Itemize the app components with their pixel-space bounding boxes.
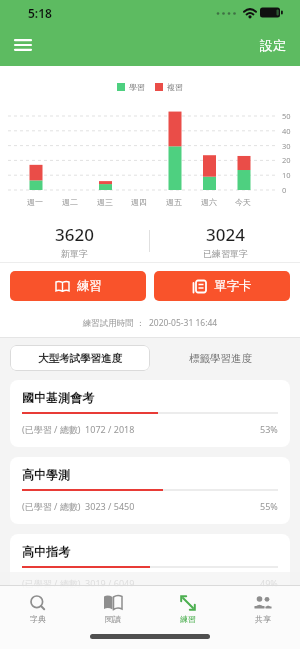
button[interactable]: 字典 — [0, 592, 75, 624]
staticText: 10 — [282, 170, 291, 180]
button[interactable]: 共享 — [225, 592, 300, 624]
button[interactable] — [15, 39, 31, 51]
staticText: (已學習 / 總數) 3023 / 5450 — [22, 500, 135, 512]
staticText: 共享 — [255, 614, 271, 624]
staticText: 30 — [282, 141, 291, 151]
button[interactable]: 大型考試學習進度 — [10, 345, 150, 371]
staticText: 設定 — [260, 37, 286, 53]
staticText: (已學習 / 總數) 1072 / 2018 — [22, 423, 135, 435]
staticText: 高中學測 — [22, 467, 70, 482]
staticText: 0 — [282, 185, 287, 195]
staticText: 字典 — [30, 614, 46, 624]
staticText: 練習 — [77, 278, 102, 294]
button[interactable]: 標籤學習進度 — [150, 345, 290, 371]
button[interactable]: 設定 — [260, 37, 300, 53]
staticText: 標籤學習進度 — [189, 352, 252, 365]
staticText: 週三 — [97, 197, 113, 207]
button[interactable]: 閱讀 — [75, 592, 150, 624]
staticText: 週四 — [131, 197, 147, 207]
staticText: 40 — [282, 126, 291, 136]
staticText: 20 — [282, 155, 291, 165]
staticText: 週六 — [201, 197, 217, 207]
staticText: (已學習 / 總數) 3019 / 6049 — [22, 577, 135, 589]
button[interactable]: 練習 — [150, 592, 225, 624]
staticText: 新單字 — [61, 248, 88, 259]
staticText: 已練習單字 — [203, 248, 248, 259]
staticText: 50 — [282, 111, 291, 121]
staticText: 今天 — [235, 197, 251, 207]
staticText: 55% — [260, 500, 278, 512]
staticText: 複習 — [167, 82, 183, 92]
staticText: 練習 — [180, 614, 196, 624]
staticText: 國中基測會考 — [22, 390, 94, 405]
button[interactable]: 單字卡 — [154, 271, 290, 301]
button[interactable]: 高中指考 — [10, 534, 290, 601]
staticText: 高中指考 — [22, 544, 70, 559]
staticText: 3024 — [206, 223, 245, 246]
staticText: 學習 — [129, 82, 145, 92]
staticText: 單字卡 — [214, 278, 252, 294]
staticText: 大型考試學習進度 — [38, 352, 122, 365]
staticText: 週一 — [27, 197, 43, 207]
staticText: 週五 — [166, 197, 182, 207]
staticText: 週二 — [62, 197, 78, 207]
staticText: 5:18 — [28, 5, 52, 21]
staticText: 練習試用時間 ： 2020-05-31 16:44 — [0, 317, 300, 329]
staticText: 49% — [260, 577, 278, 589]
staticText: 閱讀 — [105, 614, 121, 624]
button[interactable]: 國中基測會考 — [10, 380, 290, 447]
staticText: 3620 — [55, 223, 94, 246]
button[interactable]: 練習 — [10, 271, 146, 301]
button[interactable]: 高中學測 — [10, 457, 290, 524]
staticText: 53% — [260, 423, 278, 435]
